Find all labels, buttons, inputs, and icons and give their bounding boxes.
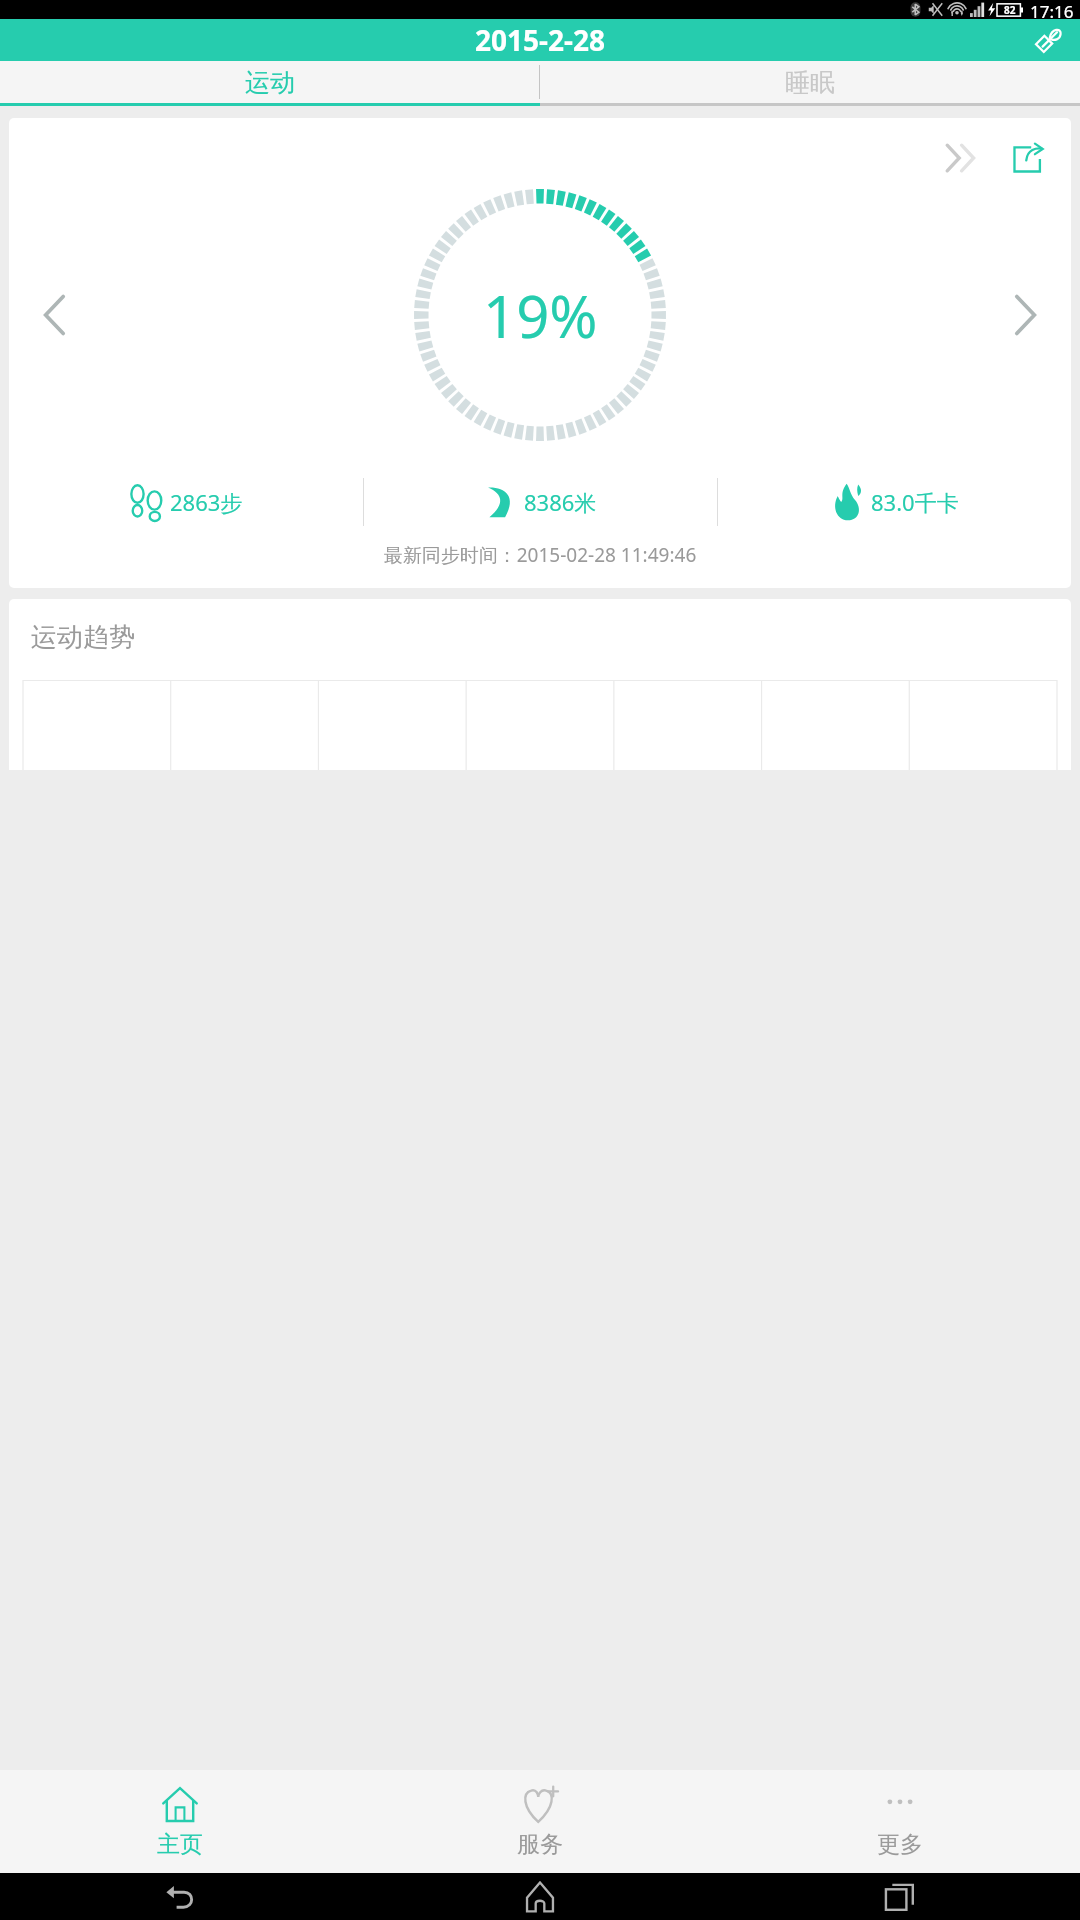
button[interactable]: Edit bbox=[1026, 19, 1070, 61]
button[interactable]: 83.0千卡 bbox=[718, 476, 1071, 528]
staticText: 82 bbox=[1004, 3, 1016, 17]
staticText: 8386米 bbox=[524, 487, 597, 517]
staticText: 2863步 bbox=[170, 487, 243, 517]
button[interactable]: Next day bbox=[991, 280, 1061, 350]
staticText: 19% bbox=[483, 276, 598, 355]
button[interactable]: Recents bbox=[720, 1873, 1080, 1920]
staticText: 主页 bbox=[157, 1830, 203, 1859]
staticText: 2015-2-28 bbox=[475, 21, 606, 59]
button[interactable]: 更多 bbox=[720, 1770, 1080, 1873]
button[interactable]: 8386米 bbox=[364, 476, 717, 528]
staticText: 运动 bbox=[245, 67, 295, 98]
button[interactable]: Share bbox=[1005, 136, 1049, 180]
staticText: 睡眠 bbox=[785, 67, 835, 98]
staticText: 最新同步时间：2015-02-28 11:49:46 bbox=[9, 542, 1071, 568]
staticText: 更多 bbox=[877, 1830, 923, 1859]
button[interactable]: Previous day bbox=[19, 280, 89, 350]
staticText: 83.0千卡 bbox=[871, 487, 959, 517]
button[interactable]: 2863步 bbox=[9, 476, 363, 528]
button[interactable]: 运动 bbox=[0, 61, 539, 103]
button[interactable]: 睡眠 bbox=[540, 61, 1080, 103]
button[interactable]: 服务 bbox=[360, 1770, 720, 1873]
button[interactable]: Back bbox=[0, 1873, 360, 1920]
button[interactable]: 主页 bbox=[0, 1770, 360, 1873]
staticText: 运动趋势 bbox=[31, 621, 135, 654]
staticText: 服务 bbox=[517, 1830, 563, 1859]
button[interactable]: More history bbox=[937, 138, 991, 178]
button[interactable]: Home bbox=[360, 1873, 720, 1920]
staticText: 17:16 bbox=[1030, 0, 1074, 19]
